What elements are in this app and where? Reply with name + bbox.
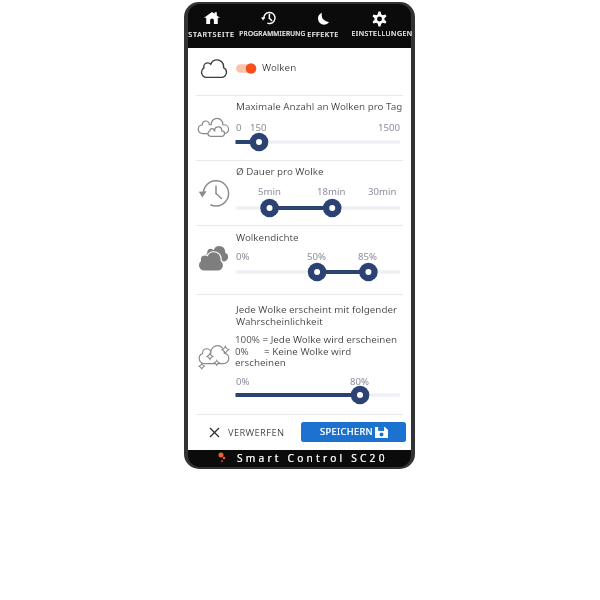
staticText: 0% — [235, 345, 249, 358]
staticText: 50% — [307, 250, 326, 263]
staticText: PROGRAMMIERUNG — [239, 29, 306, 38]
button[interactable]: SPEICHERN — [301, 422, 406, 442]
staticText: SPEICHERN — [320, 425, 373, 438]
button[interactable]: Programmierung — [244, 4, 300, 46]
staticText: 150 — [250, 121, 267, 134]
staticText: 85% — [358, 250, 377, 263]
staticText: VERWERFEN — [228, 426, 285, 439]
staticText: 18min — [317, 185, 346, 198]
button[interactable]: Einstellungen — [354, 4, 410, 46]
staticText: Jede Wolke erscheint mit folgender — [236, 303, 397, 316]
staticText: EFFEKTE — [307, 29, 339, 39]
staticText: 0% — [236, 250, 250, 263]
staticText: 0% — [236, 375, 250, 388]
staticText: Wolkendichte — [236, 231, 299, 244]
staticText: 1500 — [378, 121, 400, 134]
staticText: 0 — [236, 121, 242, 134]
staticText: 80% — [350, 375, 369, 388]
button[interactable]: Schieberegler — [224, 198, 410, 218]
button[interactable]: Schieberegler — [224, 385, 410, 405]
staticText: STARTSEITE — [188, 29, 235, 39]
staticText: Ø Dauer pro Wolke — [236, 165, 324, 178]
staticText: Wolken — [262, 61, 297, 74]
staticText: = Keine Wolke wird — [264, 345, 352, 358]
button[interactable]: Wolken ein/aus — [236, 62, 257, 75]
staticText: Maximale Anzahl an Wolken pro Tag — [236, 100, 403, 113]
button[interactable]: Schieberegler — [224, 262, 410, 282]
staticText: EINSTELLUNGEN — [351, 29, 413, 39]
staticText: Smart Control SC20 — [237, 451, 388, 465]
staticText: Wahrscheinlichkeit — [236, 315, 323, 328]
button[interactable]: Startseite — [184, 4, 240, 46]
staticText: 30min — [368, 185, 397, 198]
staticText: erscheinen — [235, 356, 286, 369]
staticText: 100% = Jede Wolke wird erscheinen — [235, 333, 397, 346]
button[interactable]: Effekte — [295, 4, 351, 46]
staticText: 5min — [258, 185, 281, 198]
button[interactable]: Schieberegler — [224, 132, 410, 152]
button[interactable]: VERWERFEN — [210, 422, 290, 442]
